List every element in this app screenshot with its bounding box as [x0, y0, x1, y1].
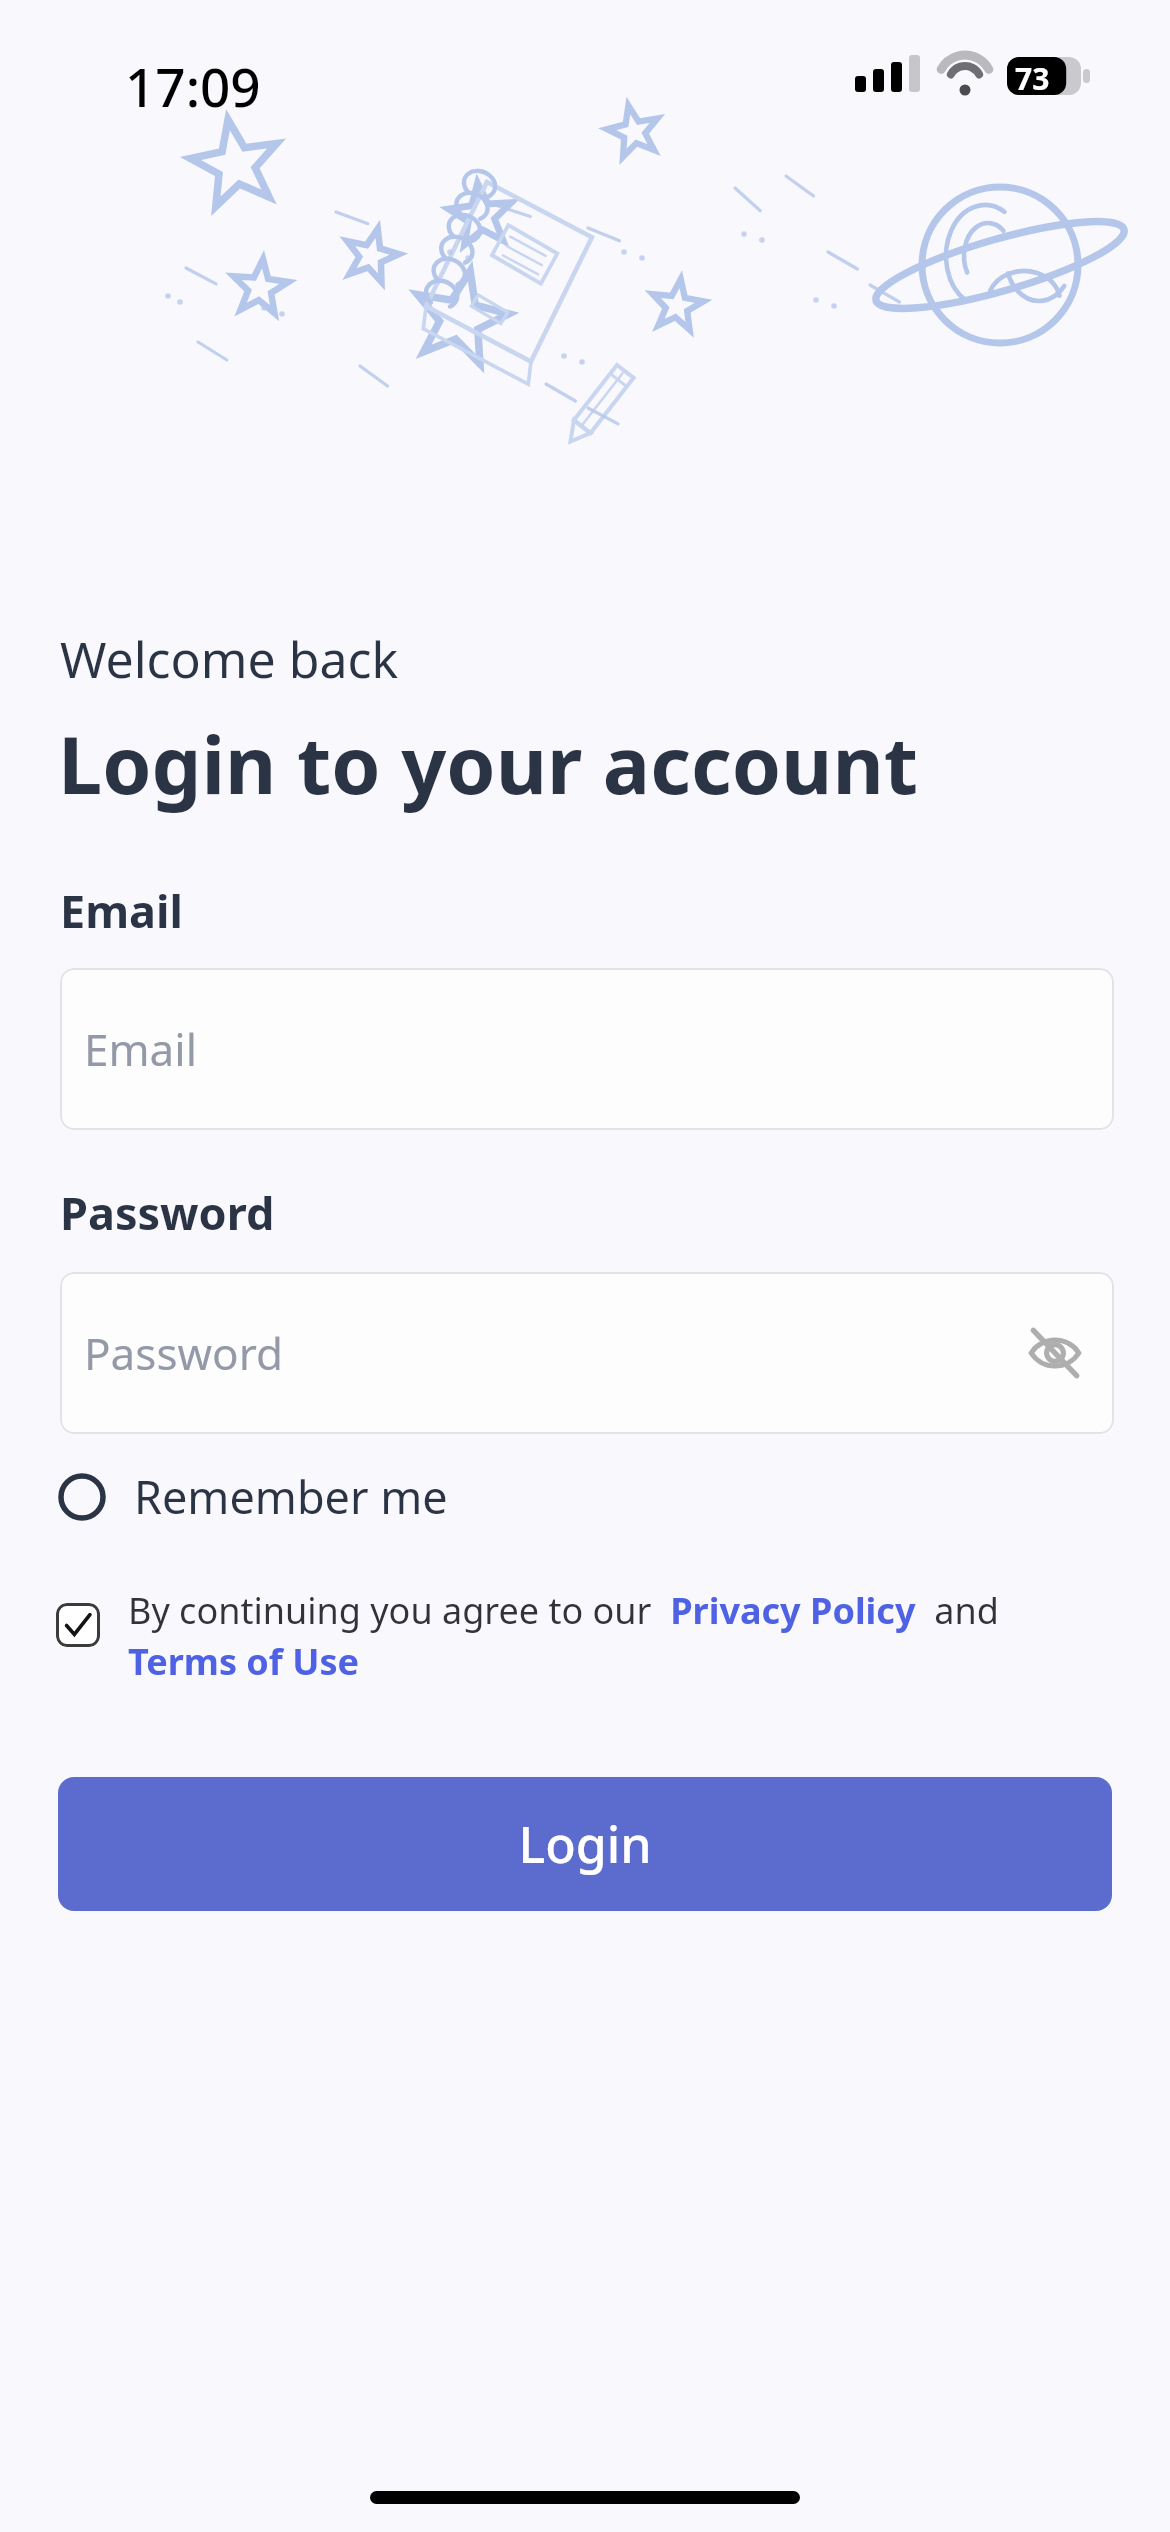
button[interactable]: Show password — [1020, 1318, 1090, 1388]
button[interactable]: Login — [58, 1777, 1112, 1911]
staticText: 17:09 — [125, 50, 261, 122]
staticText: Remember me — [134, 1466, 448, 1527]
staticText: Password — [84, 1323, 284, 1383]
staticText: Password — [60, 1182, 275, 1243]
staticText: By continuing you agree to our Privacy P… — [128, 1586, 1088, 1686]
staticText: Email — [60, 880, 183, 941]
staticText: Email — [84, 1019, 197, 1079]
staticText: 73 — [1015, 58, 1050, 99]
button[interactable]: By continuing you agree to our Privacy P… — [56, 1586, 1116, 1686]
staticText: Login — [518, 1810, 652, 1878]
staticText: Login to your account — [58, 710, 919, 818]
staticText: Welcome back — [60, 625, 399, 693]
button[interactable]: Email — [60, 968, 1114, 1130]
button[interactable]: Remember me — [52, 1460, 454, 1533]
button[interactable]: Password — [60, 1272, 1114, 1434]
